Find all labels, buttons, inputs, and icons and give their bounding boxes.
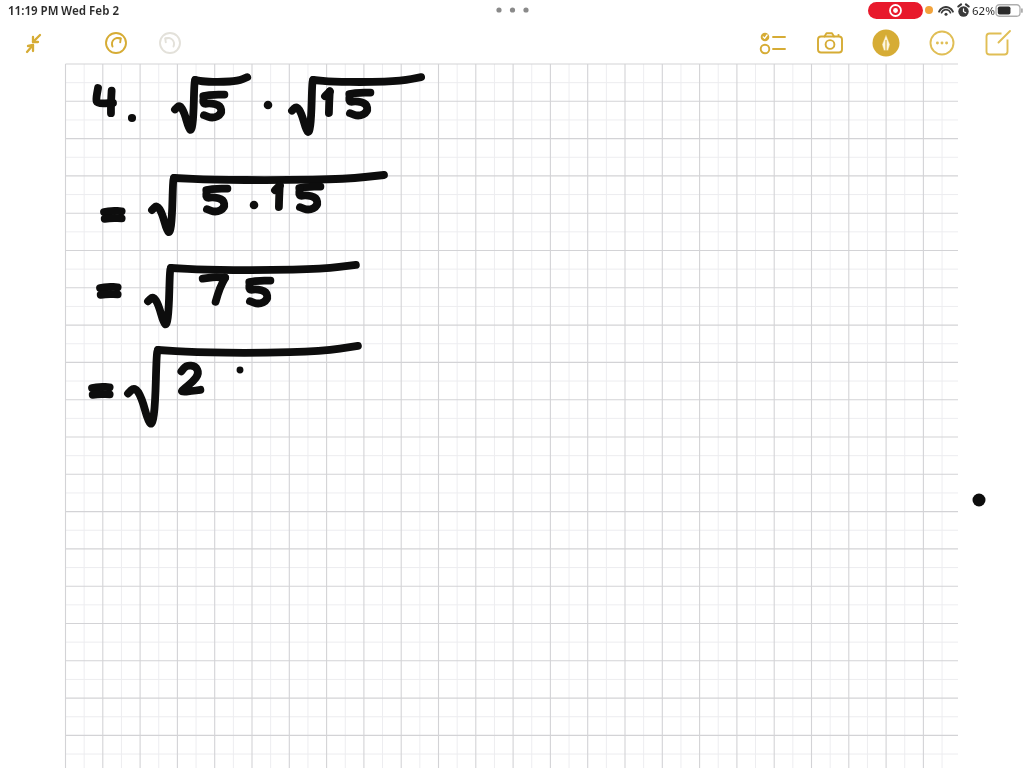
button[interactable]: Collapse — [14, 26, 54, 60]
button[interactable]: Screen recording — [868, 2, 923, 19]
button[interactable]: Checklist — [752, 26, 796, 60]
staticText: Wed Feb 2 — [61, 3, 120, 19]
button[interactable]: Undo — [96, 26, 136, 60]
button[interactable]: Compose — [976, 26, 1020, 60]
button[interactable]: Insert photo — [808, 26, 852, 60]
staticText: 62% — [972, 3, 995, 19]
button[interactable]: Pen tool — [864, 26, 908, 60]
button[interactable]: More options — [920, 26, 964, 60]
button[interactable]: Redo — [150, 26, 190, 60]
staticText: 11:19 PM — [8, 3, 59, 19]
